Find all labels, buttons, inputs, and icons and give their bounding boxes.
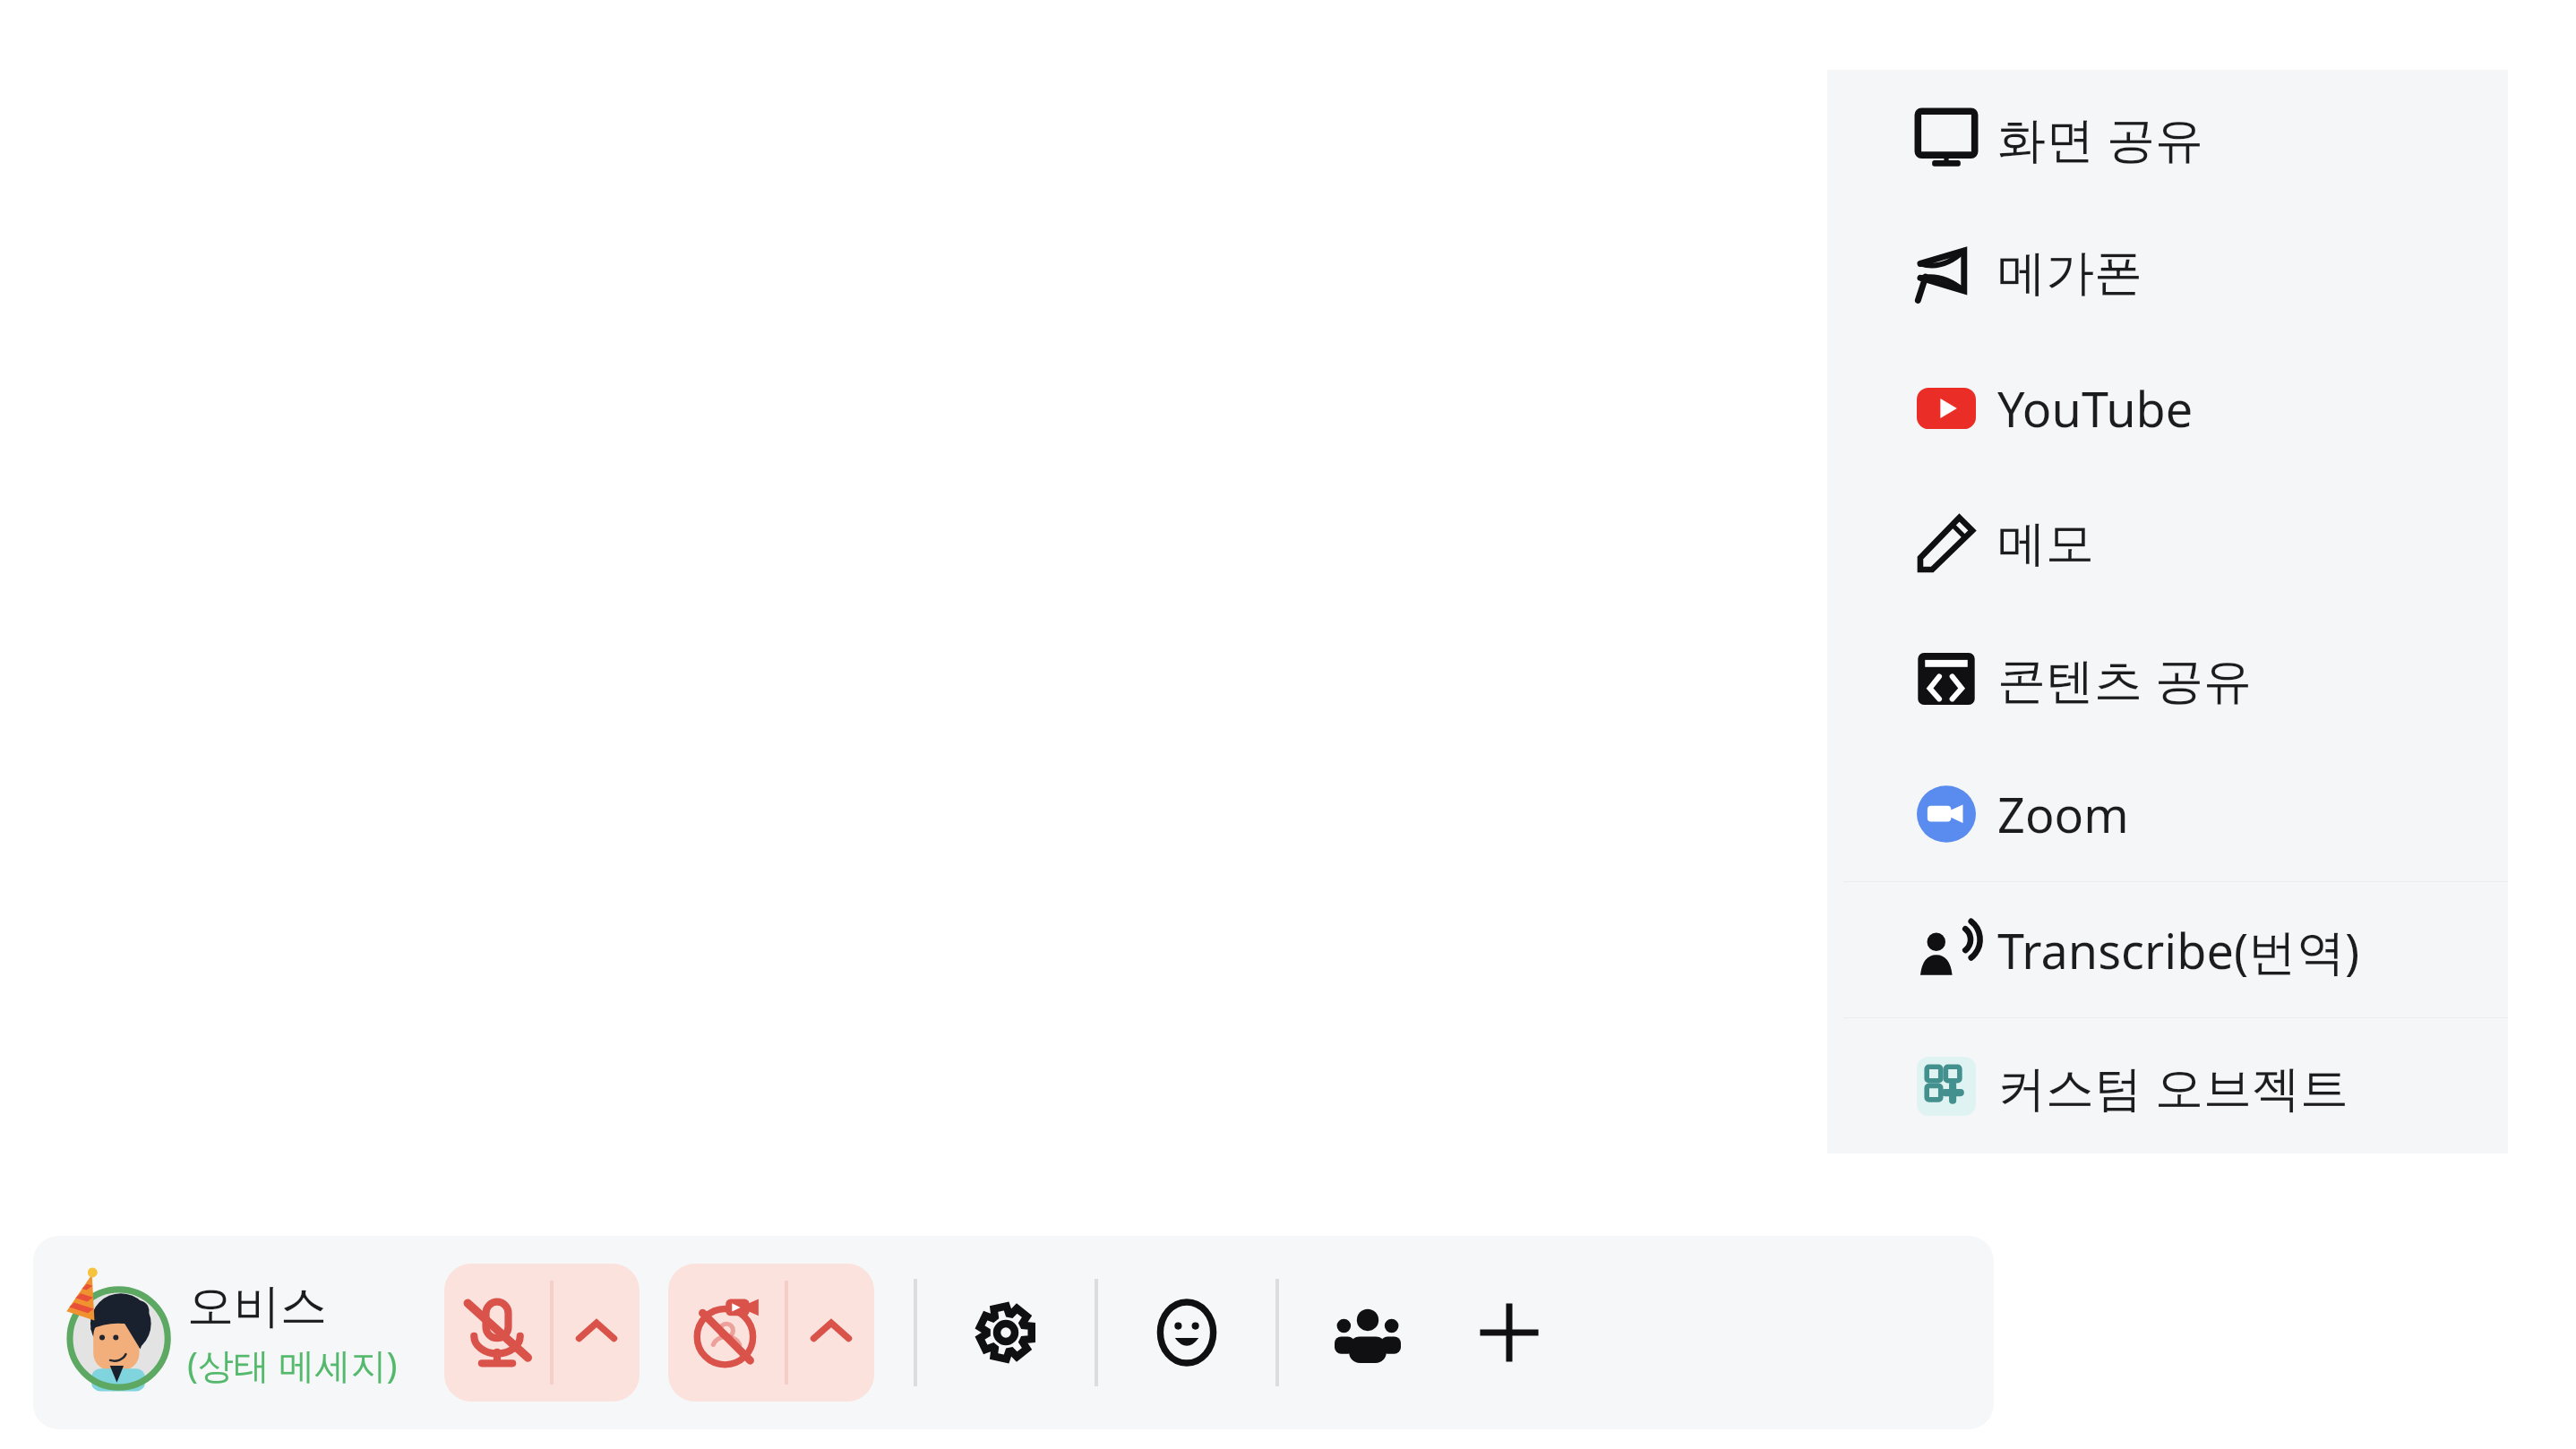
button[interactable]: 콘텐츠 공유 [1827, 611, 2508, 746]
staticText: 메가폰 [1997, 243, 2142, 304]
staticText: 오비스 [187, 1277, 327, 1336]
button[interactable]: YouTube [1827, 340, 2508, 476]
staticText: (상태 메세지) [187, 1340, 398, 1389]
staticText: 커스텀 오브젝트 [1997, 1053, 2349, 1119]
button[interactable]: Transcribe(번역) [1827, 882, 2508, 1017]
button[interactable]: Unmute microphone [444, 1264, 550, 1402]
button[interactable]: 커스텀 오브젝트 [1827, 1018, 2508, 1153]
button[interactable]: 메가폰 [1827, 205, 2508, 340]
button[interactable]: 메모 [1827, 476, 2508, 611]
button[interactable]: Camera options [788, 1264, 874, 1402]
button[interactable]: Turn on camera [668, 1264, 785, 1402]
staticText: 화면 공유 [1997, 105, 2204, 171]
staticText: Transcribe(번역) [1997, 917, 2360, 983]
staticText: YouTube [1997, 375, 2194, 442]
button[interactable]: Reactions [1138, 1283, 1236, 1382]
button[interactable]: 화면 공유 [1827, 70, 2508, 205]
button[interactable]: Add [1460, 1283, 1558, 1382]
staticText: Zoom [1997, 781, 2129, 847]
staticText: 메모 [1997, 513, 2094, 574]
button[interactable]: 오비스 [58, 1274, 398, 1391]
button[interactable]: Settings [957, 1283, 1055, 1382]
button[interactable]: Participants [1318, 1283, 1417, 1382]
button[interactable]: Microphone options [554, 1264, 640, 1402]
button[interactable]: Zoom [1827, 746, 2508, 881]
staticText: 콘텐츠 공유 [1997, 646, 2253, 712]
